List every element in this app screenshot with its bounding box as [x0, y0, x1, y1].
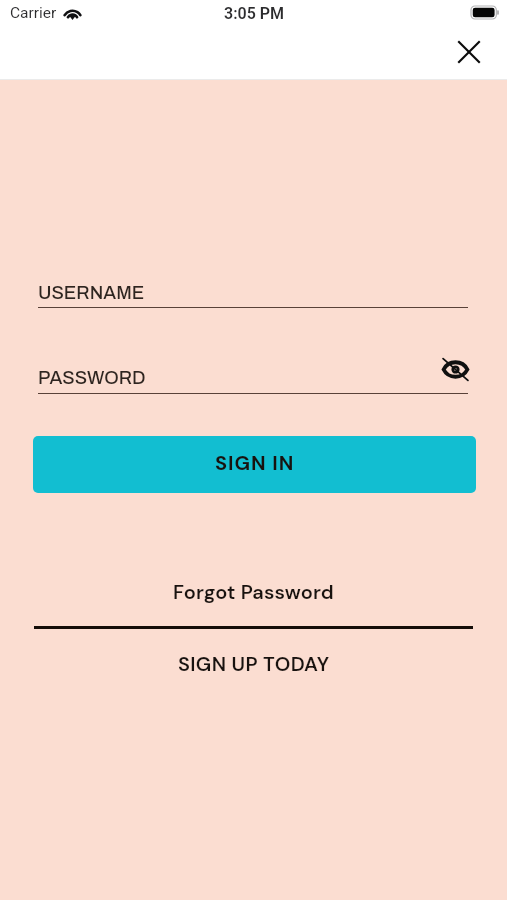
staticText: PASSWORD	[38, 368, 146, 388]
staticText: Forgot Password	[173, 579, 334, 605]
button[interactable]: SIGN IN	[33, 436, 476, 493]
button[interactable]: Forgot Password	[33, 573, 474, 611]
staticText: SIGN UP TODAY	[178, 651, 330, 677]
staticText: 3:05 PM	[224, 4, 285, 23]
staticText: Carrier	[10, 4, 57, 22]
button[interactable]: Close	[447, 30, 490, 73]
staticText: SIGN IN	[215, 450, 295, 476]
button[interactable]: Show password	[437, 351, 473, 387]
button[interactable]: SIGN UP TODAY	[33, 645, 474, 683]
staticText: USERNAME	[38, 283, 145, 303]
